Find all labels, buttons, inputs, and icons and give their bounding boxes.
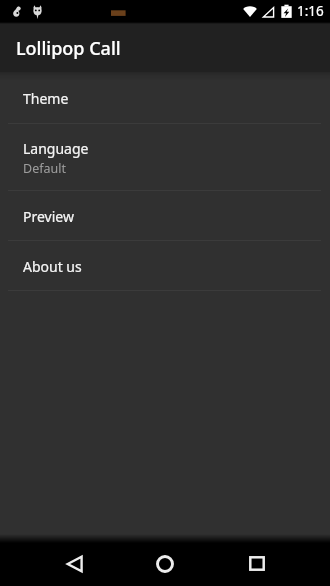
- staticText: Default: [23, 160, 66, 177]
- button[interactable]: Back: [50, 542, 98, 585]
- staticText: About us: [23, 257, 82, 276]
- staticText: Language: [23, 139, 89, 158]
- staticText: 1:16: [297, 2, 324, 20]
- staticText: Theme: [23, 89, 69, 108]
- button[interactable]: Recent apps: [233, 542, 281, 585]
- button[interactable]: Language: [0, 124, 330, 190]
- staticText: Lollipop Call: [16, 36, 121, 61]
- button[interactable]: About us: [0, 241, 330, 290]
- staticText: Preview: [23, 207, 74, 226]
- button[interactable]: Lollipop Call: [0, 24, 330, 72]
- button[interactable]: Home: [141, 542, 189, 585]
- button[interactable]: Preview: [0, 191, 330, 240]
- button[interactable]: Theme: [0, 72, 330, 123]
